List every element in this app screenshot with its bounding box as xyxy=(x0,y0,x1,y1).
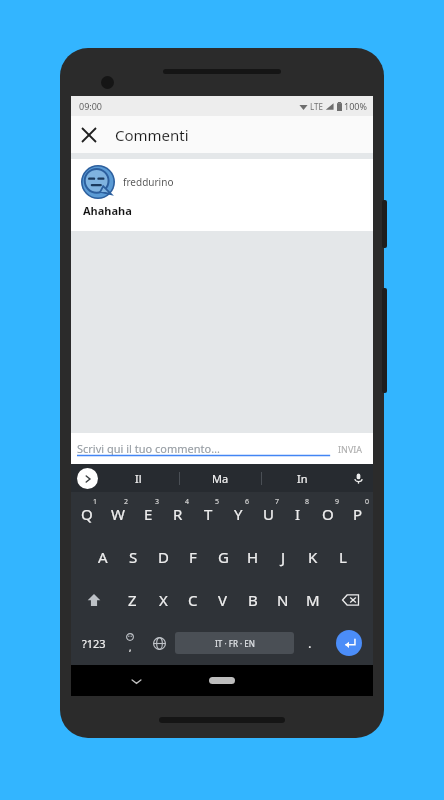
staticText: Il xyxy=(135,471,142,486)
button[interactable]: IT · FR · EN xyxy=(175,632,294,654)
button[interactable]: K xyxy=(298,535,328,578)
button[interactable]: ?123 xyxy=(71,621,116,665)
staticText: Scrivi qui il tuo commento… xyxy=(77,441,220,456)
button[interactable]: P xyxy=(343,492,373,535)
staticText: U xyxy=(263,504,274,524)
staticText: Y xyxy=(234,504,243,524)
button[interactable]: C xyxy=(178,578,208,621)
staticText: 8 xyxy=(305,497,310,507)
button[interactable]: R xyxy=(163,492,193,535)
button[interactable]: U xyxy=(253,492,283,535)
staticText: 1 xyxy=(93,497,98,507)
button[interactable]: H xyxy=(238,535,268,578)
button[interactable]: A xyxy=(87,535,118,578)
staticText: T xyxy=(204,504,213,524)
button[interactable]: I xyxy=(283,492,313,535)
button[interactable]: J xyxy=(268,535,298,578)
button[interactable]: Backspace xyxy=(328,578,373,621)
staticText: V xyxy=(218,590,228,610)
button[interactable]: . xyxy=(294,621,325,665)
button[interactable]: Ma xyxy=(180,464,261,492)
button[interactable]: T xyxy=(193,492,223,535)
staticText: Q xyxy=(81,504,93,524)
staticText: R xyxy=(173,504,183,524)
button[interactable]: S xyxy=(118,535,148,578)
button[interactable]: G xyxy=(208,535,238,578)
staticText: B xyxy=(248,590,258,610)
button[interactable]: N xyxy=(268,578,298,621)
button[interactable]: Z xyxy=(117,578,148,621)
staticText: J xyxy=(281,547,286,567)
button[interactable]: O xyxy=(313,492,343,535)
staticText: Ahahaha xyxy=(83,203,132,218)
button[interactable]: Shift xyxy=(71,578,117,621)
button[interactable]: Q xyxy=(71,492,102,535)
staticText: , xyxy=(129,641,132,653)
button[interactable]: Voice input xyxy=(343,464,373,492)
button[interactable]: Scrivi qui il tuo commento… xyxy=(77,441,334,456)
button[interactable]: W xyxy=(102,492,133,535)
staticText: 0 xyxy=(365,497,370,507)
button[interactable]: In xyxy=(262,464,343,492)
staticText: O xyxy=(322,504,334,524)
staticText: Commenti xyxy=(115,125,189,145)
button[interactable]: Y xyxy=(223,492,253,535)
button[interactable]: B xyxy=(238,578,268,621)
staticText: INVIA xyxy=(338,443,363,455)
button[interactable]: Home xyxy=(209,677,235,684)
staticText: P xyxy=(353,504,363,524)
staticText: 6 xyxy=(245,497,250,507)
staticText: I xyxy=(295,504,301,524)
staticText: 09:00 xyxy=(79,100,103,112)
staticText: S xyxy=(129,547,138,567)
button[interactable]: INVIA xyxy=(334,443,367,455)
staticText: 2 xyxy=(124,497,129,507)
staticText: G xyxy=(218,547,229,567)
staticText: A xyxy=(98,547,108,567)
button[interactable]: L xyxy=(328,535,358,578)
button[interactable]: E xyxy=(133,492,163,535)
staticText: M xyxy=(306,590,320,610)
button[interactable]: freddurino xyxy=(71,159,373,231)
staticText: In xyxy=(297,471,308,486)
button[interactable]: Emoji xyxy=(116,621,144,665)
button[interactable]: X xyxy=(148,578,178,621)
other: Power xyxy=(382,200,387,248)
staticText: H xyxy=(247,547,259,567)
staticText: W xyxy=(111,504,125,524)
staticText: N xyxy=(277,590,289,610)
staticText: ?123 xyxy=(82,636,106,651)
button[interactable]: D xyxy=(148,535,178,578)
staticText: 100% xyxy=(344,100,367,112)
staticText: LTE xyxy=(310,101,323,112)
staticText: 5 xyxy=(215,497,220,507)
staticText: L xyxy=(339,547,347,567)
staticText: 9 xyxy=(335,497,340,507)
staticText: IT · FR · EN xyxy=(215,638,255,649)
staticText: Ma xyxy=(212,471,229,486)
staticText: . xyxy=(308,634,312,652)
button[interactable]: Il xyxy=(98,464,179,492)
staticText: C xyxy=(188,590,198,610)
button[interactable]: F xyxy=(178,535,208,578)
staticText: X xyxy=(159,590,168,610)
staticText: Z xyxy=(128,590,137,610)
staticText: 4 xyxy=(185,497,190,507)
staticText: K xyxy=(308,547,318,567)
staticText: 7 xyxy=(275,497,280,507)
other: Volume xyxy=(382,288,387,393)
button[interactable]: Enter xyxy=(336,630,362,656)
button[interactable]: M xyxy=(298,578,328,621)
button[interactable]: V xyxy=(208,578,238,621)
button[interactable]: Close xyxy=(71,117,107,153)
staticText: 3 xyxy=(155,497,160,507)
staticText: F xyxy=(189,547,197,567)
button[interactable]: Expand toolbar xyxy=(77,468,98,489)
staticText: D xyxy=(158,547,169,567)
button[interactable]: Change language xyxy=(144,621,175,665)
staticText: freddurino xyxy=(123,175,174,189)
button[interactable]: Hide keyboard xyxy=(123,668,149,694)
staticText: E xyxy=(144,504,153,524)
